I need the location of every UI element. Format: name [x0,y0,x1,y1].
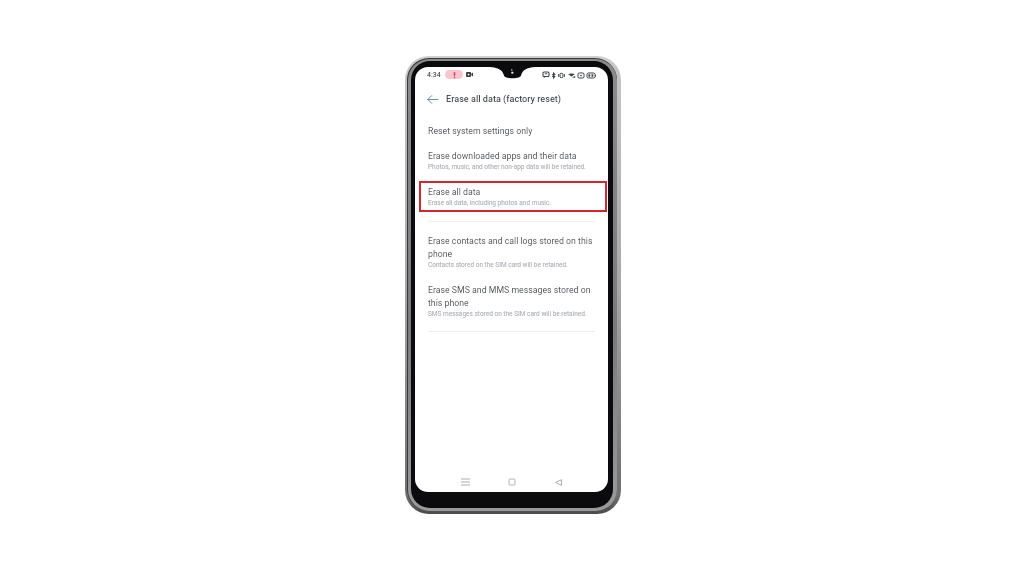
staticText: 4:34 [427,71,441,79]
staticText: Erase downloaded apps and their data [428,151,577,161]
button[interactable]: Reset system settings only [415,114,608,147]
staticText: Photos, music, and other non-app data wi… [428,163,586,171]
button[interactable]: Erase all data [419,181,607,212]
button[interactable]: Erase downloaded apps and their data [415,147,608,181]
button[interactable]: Erase SMS and MMS messages stored on thi… [415,275,608,324]
button[interactable]: Home [501,471,523,492]
staticText: Contacts stored on the SIM card will be … [428,261,568,269]
button[interactable]: Back [423,90,441,108]
button[interactable]: Erase contacts and call logs stored on t… [415,222,608,275]
button[interactable]: Back [547,471,569,492]
staticText: Erase all data (factory reset) [446,94,562,105]
staticText: Reset system settings only [428,126,533,136]
staticText: Erase SMS and MMS messages stored on thi… [428,285,595,308]
staticText: Erase all data [428,187,481,197]
staticText: Erase contacts and call logs stored on t… [428,236,595,259]
staticText: SMS messages stored on the SIM card will… [428,310,587,318]
staticText: Erase all data, including photos and mus… [428,199,552,207]
button[interactable]: Recent apps [454,471,476,492]
